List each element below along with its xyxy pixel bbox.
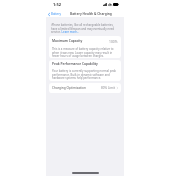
staticText: Maximum Capacity <box>52 39 83 43</box>
staticText: Your battery is currently supporting nor… <box>52 69 118 79</box>
staticText: Peak Performance Capability <box>52 62 98 66</box>
staticText: iPhone batteries, like all rechargeable … <box>51 23 118 33</box>
button[interactable]: Charging Optimization <box>49 83 121 93</box>
staticText: Charging Optimization <box>52 86 86 90</box>
button[interactable]: Maximum Capacity <box>49 36 121 43</box>
staticText: 1:52 <box>53 2 61 7</box>
staticText: Battery Health & Charging <box>70 12 112 16</box>
staticText: 100% <box>109 39 118 43</box>
button[interactable]: Battery <box>46 11 64 17</box>
staticText: 80% Limit <box>101 86 116 90</box>
staticText: Battery <box>51 12 61 16</box>
staticText: This is a measure of battery capacity re… <box>52 47 118 57</box>
